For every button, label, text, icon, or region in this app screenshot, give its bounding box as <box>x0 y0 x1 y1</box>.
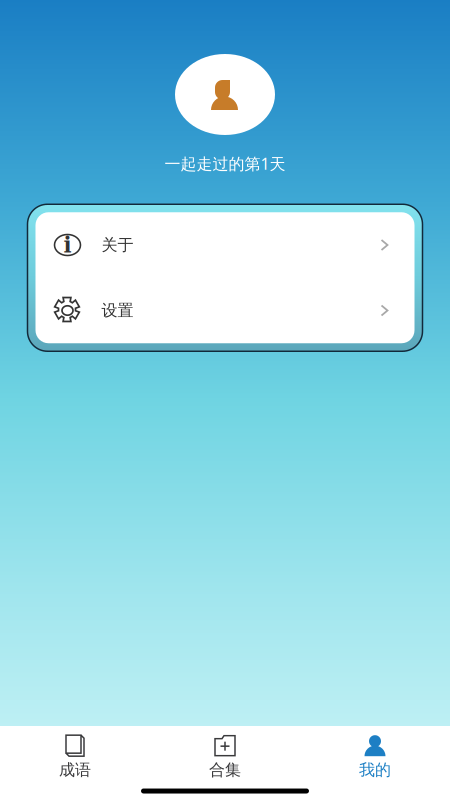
staticText: 合集 <box>209 760 241 780</box>
staticText: 我的 <box>359 760 391 780</box>
staticText: 设置 <box>101 301 133 320</box>
button[interactable]: 设置 <box>35 278 414 343</box>
button[interactable]: 成语 <box>0 732 150 782</box>
button[interactable]: 我的 <box>300 732 450 782</box>
staticText: i <box>63 232 71 258</box>
button[interactable]: i <box>35 212 414 278</box>
button[interactable]: 合集 <box>150 732 300 782</box>
staticText: 成语 <box>59 760 91 780</box>
staticText: 关于 <box>101 235 133 255</box>
staticText: 一起走过的第1天 <box>164 153 285 174</box>
